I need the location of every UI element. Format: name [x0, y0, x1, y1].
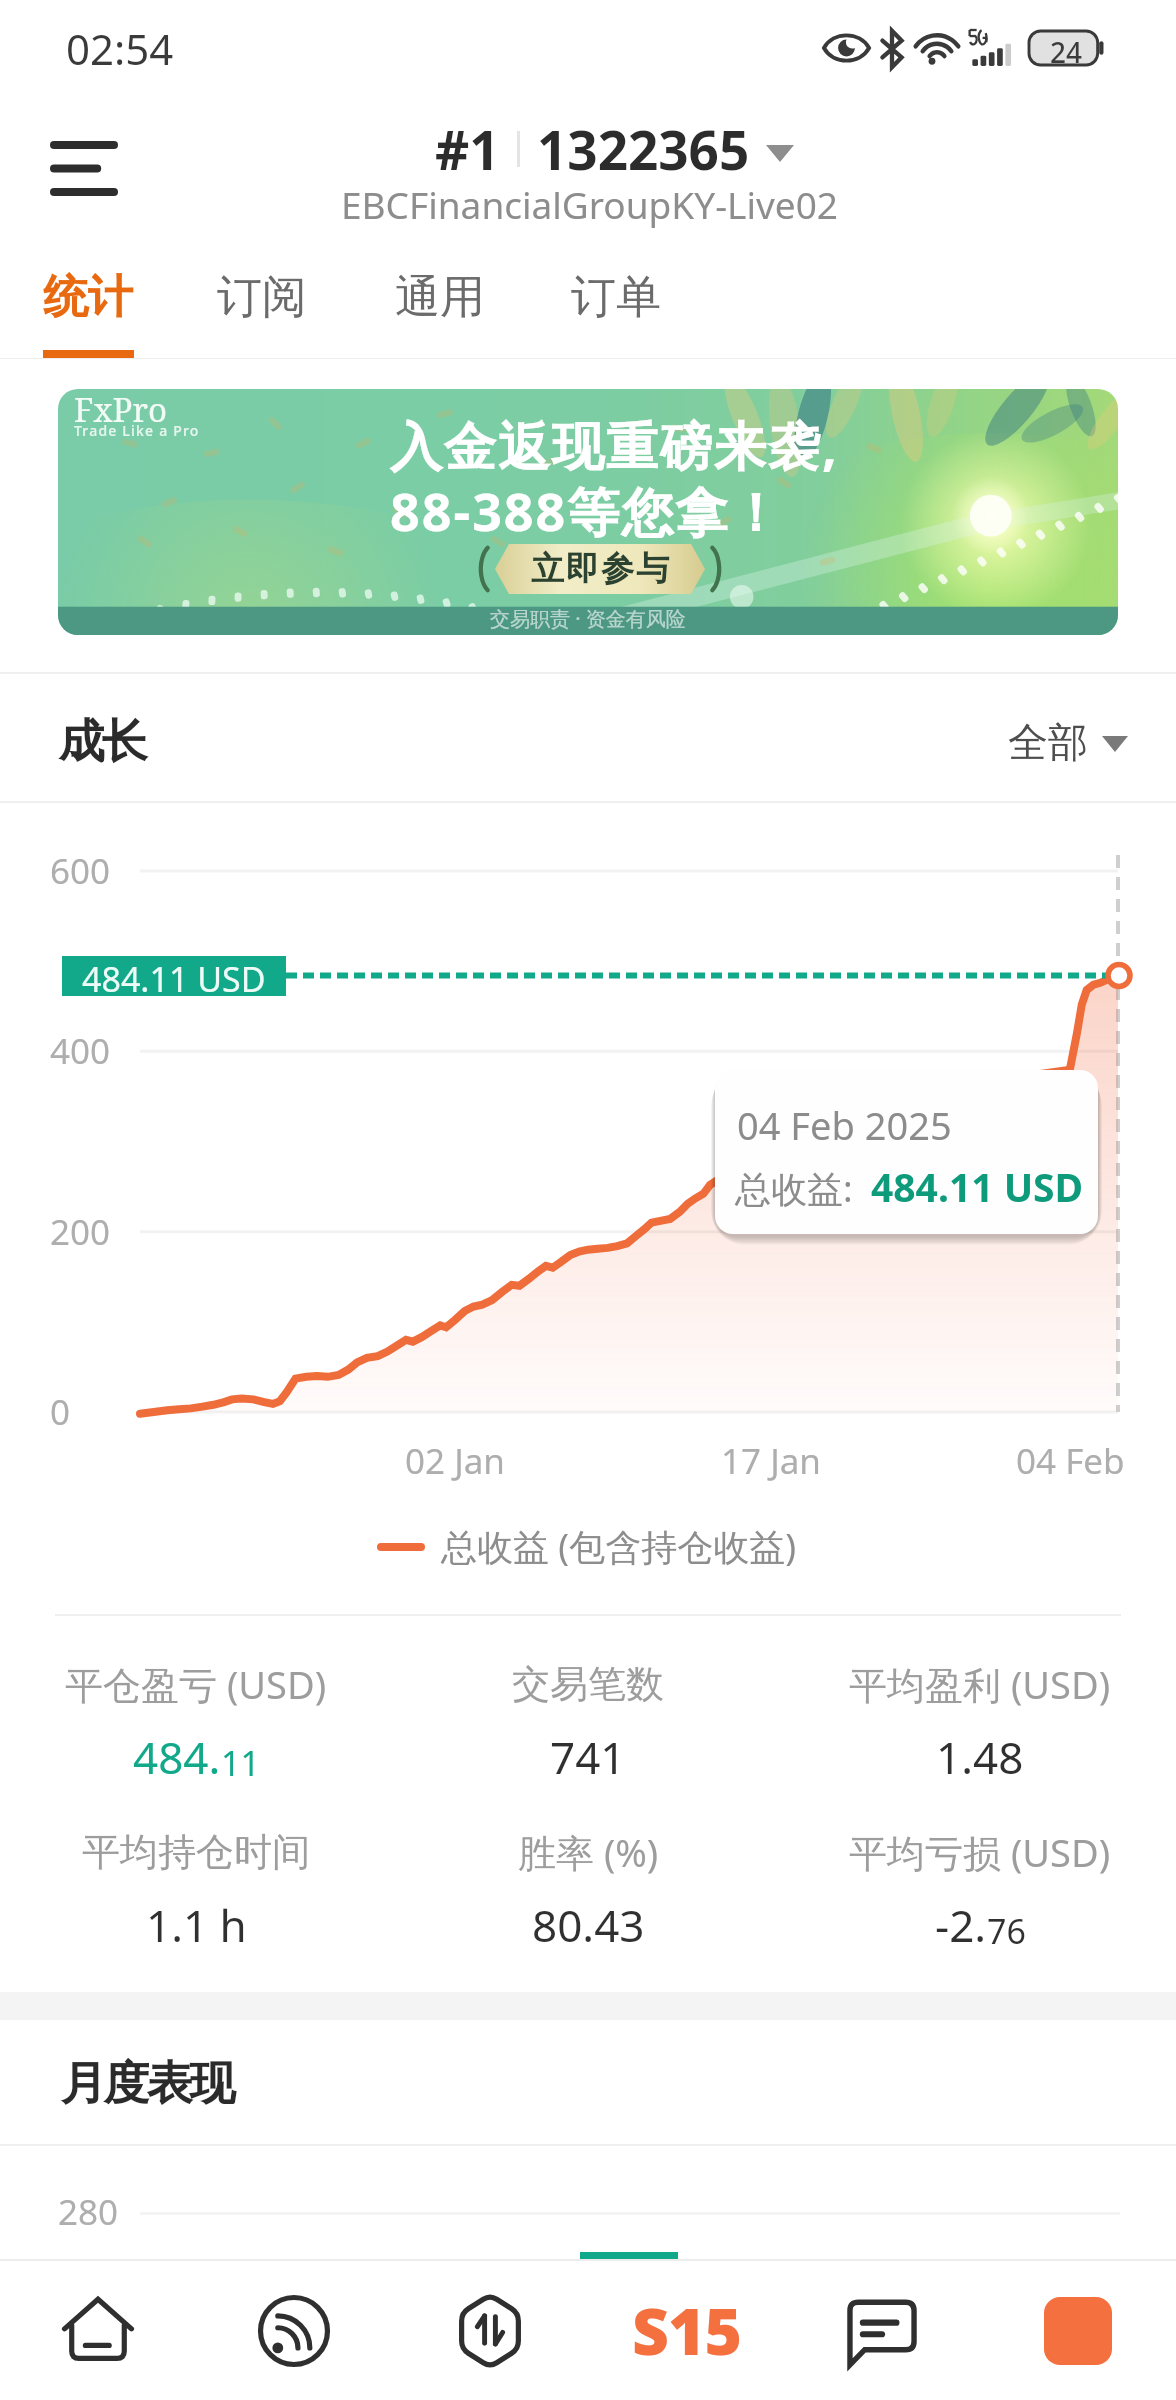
staticText: 1.1 h	[146, 1895, 247, 1955]
staticText: 交易职责 · 资金有风险	[490, 605, 686, 632]
staticText: 交易笔数	[512, 1660, 664, 1708]
staticText: 平均盈利 (USD)	[849, 1658, 1111, 1710]
staticText: 741	[550, 1727, 626, 1787]
button[interactable]: FxPro	[58, 389, 1118, 635]
button[interactable]: 全部	[988, 693, 1138, 765]
staticText: S15	[632, 2287, 741, 2374]
staticText: 1.48	[936, 1727, 1024, 1787]
staticText: 484.11 USD	[82, 956, 266, 996]
button[interactable]: Home	[0, 2261, 196, 2400]
staticText: 平均持仓时间	[82, 1828, 310, 1876]
staticText: 立即参与	[530, 548, 670, 590]
staticText: 总收益 (包含持仓收益)	[441, 1522, 796, 1571]
staticText: 04 Feb 2025	[737, 1099, 952, 1151]
staticText: 胜率 (%)	[518, 1826, 659, 1878]
staticText: 280	[58, 2188, 119, 2236]
staticText: 0	[50, 1388, 71, 1436]
button[interactable]: 统计	[8, 250, 168, 358]
staticText: 统计	[43, 269, 133, 326]
button[interactable]: 订阅	[182, 250, 342, 358]
staticText: 成长	[60, 713, 146, 771]
button[interactable]: #1	[0, 108, 1176, 248]
staticText: 通用	[395, 269, 485, 326]
staticText: 全部	[1008, 717, 1088, 765]
staticText: 400	[50, 1027, 111, 1075]
button[interactable]: Messages	[784, 2261, 980, 2400]
staticText: #1	[435, 113, 500, 185]
staticText: 订单	[571, 269, 661, 326]
staticText: 484.	[133, 1727, 221, 1787]
staticText: 02 Jan	[405, 1437, 505, 1481]
staticText: 88-388等您拿！	[390, 475, 784, 546]
staticText: 11	[221, 1740, 260, 1786]
staticText: 入金返现重磅来袭,	[390, 409, 839, 480]
staticText: 200	[50, 1208, 111, 1256]
button[interactable]: 订单	[536, 250, 696, 358]
staticText: EBCFinancialGroupKY-Live02	[341, 179, 839, 229]
staticText: 24	[1050, 33, 1083, 71]
staticText: 17 Jan	[721, 1437, 821, 1481]
staticText: 1322365	[537, 113, 750, 185]
button[interactable]: Profile	[980, 2261, 1176, 2400]
staticText: 月度表现	[62, 2055, 234, 2113]
staticText: 484.11 USD	[871, 1160, 1084, 1213]
staticText: 平仓盈亏 (USD)	[65, 1658, 327, 1710]
staticText: 80.43	[532, 1895, 645, 1955]
button[interactable]: Signals	[196, 2261, 392, 2400]
staticText: 订阅	[217, 269, 307, 326]
staticText: Trade Like a Pro	[74, 421, 200, 440]
staticText: 02:54	[66, 20, 174, 77]
staticText: -2.	[935, 1895, 987, 1955]
button[interactable]: 通用	[360, 250, 520, 358]
staticText: 76	[987, 1908, 1026, 1954]
button[interactable]: Menu	[18, 100, 150, 236]
button[interactable]: S15	[588, 2261, 784, 2400]
staticText: FxPro	[74, 389, 168, 432]
staticText: 平均亏损 (USD)	[849, 1826, 1111, 1878]
staticText: 总收益:	[735, 1164, 863, 1213]
staticText: 04 Feb	[1016, 1437, 1125, 1481]
staticText: 600	[50, 847, 111, 895]
button[interactable]: Trade	[392, 2261, 588, 2400]
